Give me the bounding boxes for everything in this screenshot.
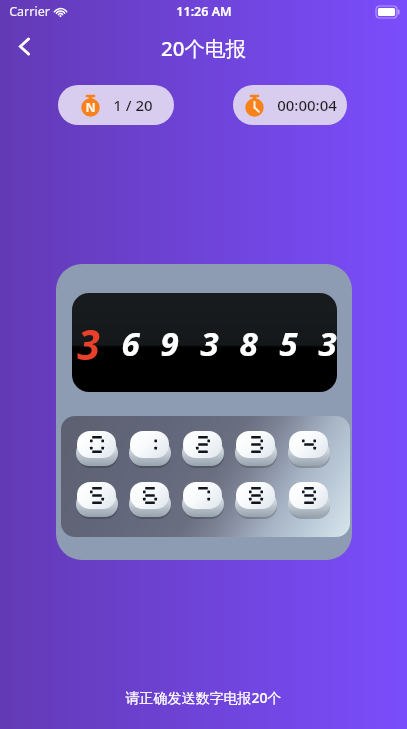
button[interactable] [236, 482, 275, 509]
button[interactable] [289, 482, 328, 509]
button[interactable] [77, 482, 116, 509]
staticText: 1 / 20 [113, 95, 153, 115]
staticText: 3 [77, 316, 100, 372]
button[interactable] [183, 482, 222, 509]
button[interactable] [130, 431, 169, 458]
button[interactable] [183, 431, 222, 458]
staticText: 6 [121, 321, 140, 366]
button[interactable] [130, 482, 169, 509]
button[interactable]: Back [6, 28, 42, 64]
staticText: N [85, 99, 96, 116]
staticText: 3 [200, 321, 219, 366]
staticText: 20个电报 [161, 34, 246, 62]
button[interactable] [236, 431, 275, 458]
staticText: 请正确发送数字电报20个 [125, 688, 282, 707]
staticText: 5 [279, 321, 298, 366]
staticText: Carrier [9, 3, 50, 20]
staticText: 9 [160, 321, 179, 366]
staticText: 8 [239, 321, 258, 366]
button[interactable] [289, 431, 328, 458]
staticText: 3 [318, 321, 337, 366]
staticText: 00:00:04 [277, 95, 337, 115]
button[interactable]: 00:00:04 [233, 85, 347, 125]
button[interactable]: N [58, 85, 174, 125]
button[interactable] [77, 431, 116, 458]
staticText: 11:26 AM [176, 3, 232, 20]
